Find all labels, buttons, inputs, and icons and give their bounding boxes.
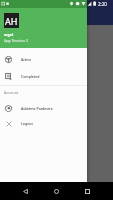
staticText: arget	[4, 32, 14, 37]
button[interactable]: Askètme Pardestre	[0, 100, 87, 116]
staticText: Askètme Pardestre	[21, 106, 53, 111]
staticText: App Version 2	[4, 38, 28, 43]
button[interactable]: Active	[0, 51, 87, 67]
staticText: Logout	[21, 121, 33, 126]
staticText: Account	[4, 90, 19, 95]
staticText: Completed	[21, 74, 40, 79]
staticText: 2:20	[98, 1, 107, 7]
button[interactable]: Recent apps	[78, 182, 96, 200]
button[interactable]: Home	[47, 182, 65, 200]
button[interactable]: Back	[16, 182, 34, 200]
button[interactable]: Completed	[0, 68, 87, 84]
staticText: Active	[21, 57, 32, 62]
button[interactable]: Logout	[0, 115, 87, 131]
button[interactable]: AH	[0, 0, 87, 48]
staticText: AH	[5, 15, 18, 27]
